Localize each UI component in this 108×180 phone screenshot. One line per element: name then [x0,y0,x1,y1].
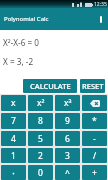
button[interactable]: 4 [1,131,26,146]
staticText: 0 [38,167,43,179]
button[interactable]: CALCULATE [23,79,77,93]
button[interactable]: 1 [1,148,26,163]
button[interactable]: 3 [55,148,80,163]
button[interactable]: 6 [55,131,80,146]
button[interactable]: 7 [1,113,26,129]
staticText: · [12,165,15,180]
button[interactable]: x [1,95,26,111]
staticText: 3 [65,150,70,162]
staticText: * [92,115,97,127]
button[interactable]: 5 [28,131,53,146]
button[interactable]: - [82,131,107,146]
staticText: X²-X-6 = 0 [3,37,40,48]
button[interactable]: 8 [28,113,53,129]
staticText: 4 [11,133,16,145]
staticText: / [93,150,97,162]
button[interactable]: + [82,165,107,180]
button[interactable]: 0 [28,165,53,180]
staticText: 7 [11,115,16,127]
staticText: 12:35 [94,1,107,8]
staticText: RESET [82,81,104,91]
button[interactable]: · [1,165,26,180]
staticText: CALCULATE [30,81,71,91]
button[interactable]: 2 [28,148,53,163]
staticText: ^ [65,167,70,179]
button[interactable]: / [82,148,107,163]
staticText: 6 [65,133,70,145]
staticText: 9 [65,115,70,127]
staticText: Polynomial Calc [4,15,49,23]
button[interactable]: x² [28,95,53,111]
staticText: x² [37,97,45,109]
staticText: 5 [38,133,43,145]
button[interactable] [82,95,107,111]
staticText: 8 [38,115,43,127]
staticText: + [92,167,97,179]
button[interactable]: 9 [55,113,80,129]
staticText: X = 3, -2 [3,56,34,67]
button[interactable]: x³ [55,95,80,111]
button[interactable]: * [82,113,107,129]
staticText: 2 [38,150,43,162]
staticText: 1 [11,150,16,162]
staticText: x [11,97,16,109]
staticText: x³ [64,97,72,109]
staticText: - [93,133,96,145]
button[interactable] [100,16,102,23]
button[interactable]: RESET [80,79,105,93]
button[interactable]: ^ [55,165,80,180]
